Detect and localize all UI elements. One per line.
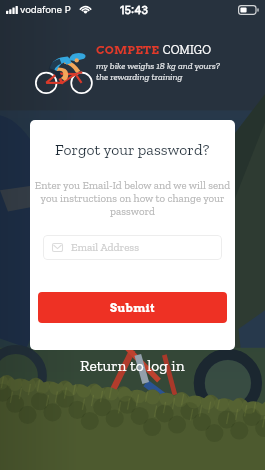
staticText: my bike weighs 18 kg and yours?: [96, 60, 220, 71]
staticText: Forgot your password?: [55, 140, 210, 159]
button[interactable]: Return to log in: [70, 352, 195, 379]
other: Battery: [238, 5, 258, 15]
staticText: COMIGO: [160, 43, 212, 57]
other: Signal strength: [6, 6, 18, 14]
staticText: Email Address: [71, 241, 139, 254]
staticText: 15:43: [120, 3, 149, 16]
other: Wi-Fi: [78, 4, 93, 14]
staticText: the rewarding training: [96, 71, 183, 82]
staticText: Enter you Email-Id below and we will sen…: [30, 179, 235, 218]
button[interactable]: Submit: [38, 292, 227, 323]
button[interactable]: Email Address: [43, 235, 222, 260]
staticText: Submit: [110, 301, 156, 315]
staticText: COMPETE: [96, 43, 160, 57]
other: Compete Comigo logo: [34, 49, 95, 93]
staticText: vodafone P: [20, 4, 71, 15]
